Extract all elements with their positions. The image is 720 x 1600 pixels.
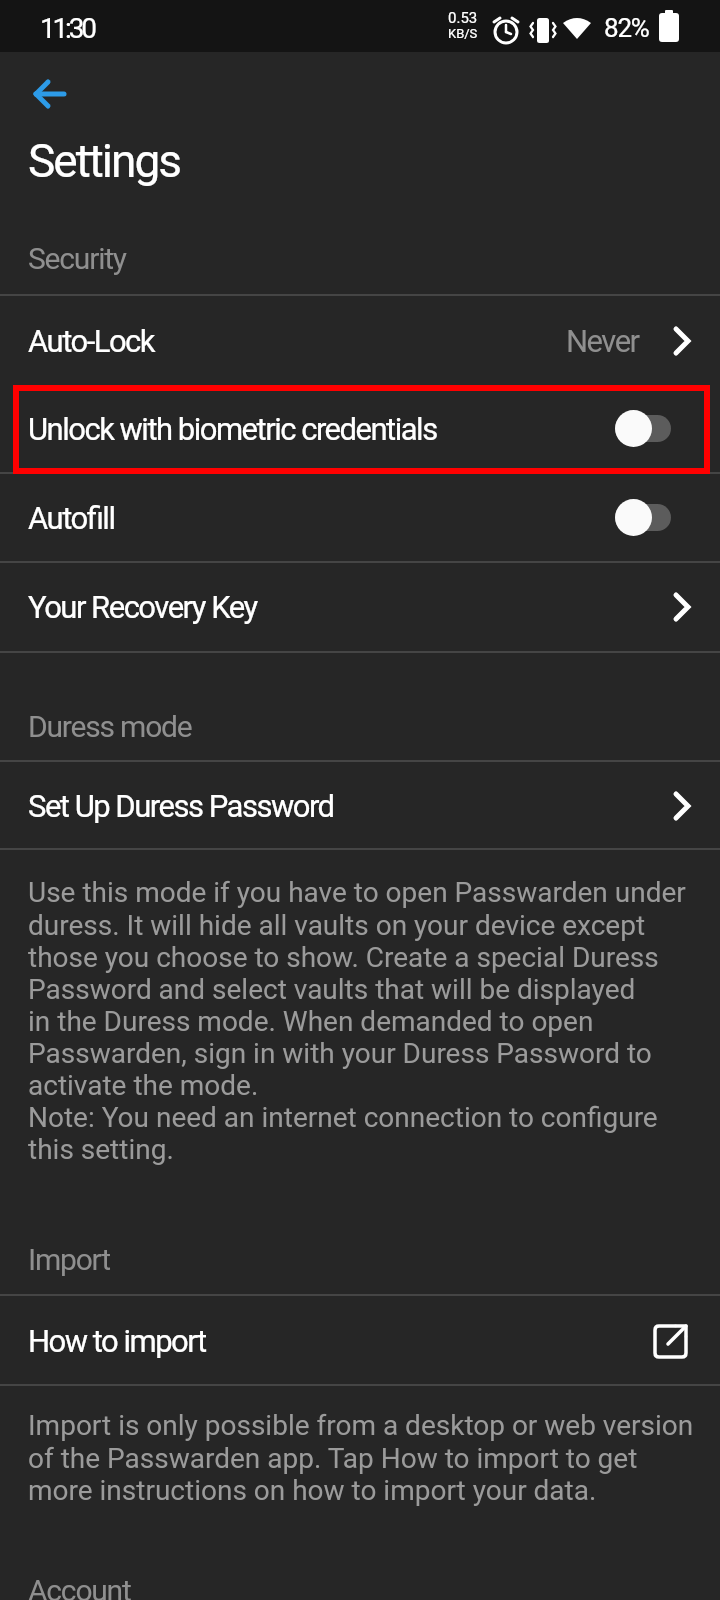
staticText: 82% [604, 13, 649, 43]
button[interactable] [615, 499, 671, 536]
button[interactable]: Autofill [0, 473, 720, 562]
staticText: Never [566, 323, 639, 359]
staticText: Settings [28, 134, 180, 188]
staticText: 0.53 [448, 9, 478, 27]
button[interactable] [615, 410, 671, 447]
staticText: Import is only possible from a desktop o… [28, 1409, 694, 1506]
staticText: Security [28, 241, 126, 276]
button[interactable]: Set Up Duress Password [0, 761, 720, 850]
button[interactable]: How to import [0, 1296, 720, 1385]
button[interactable] [26, 72, 74, 120]
staticText: Account [28, 1573, 131, 1600]
staticText: Your Recovery Key [28, 589, 257, 625]
staticText: Autofill [28, 500, 115, 536]
staticText: Use this mode if you have to open Passwa… [28, 876, 686, 1165]
staticText: How to import [28, 1323, 206, 1359]
button[interactable]: Your Recovery Key [0, 562, 720, 651]
staticText: 11:30 [40, 12, 94, 45]
staticText: Auto-Lock [28, 323, 155, 359]
button[interactable]: Unlock with biometric credentials [0, 384, 720, 473]
staticText: Import [28, 1242, 110, 1277]
staticText: Duress mode [28, 709, 192, 744]
staticText: Unlock with biometric credentials [28, 411, 437, 447]
staticText: Set Up Duress Password [28, 788, 334, 824]
button[interactable]: Auto-Lock [0, 296, 720, 385]
staticText: KB/S [448, 26, 478, 41]
